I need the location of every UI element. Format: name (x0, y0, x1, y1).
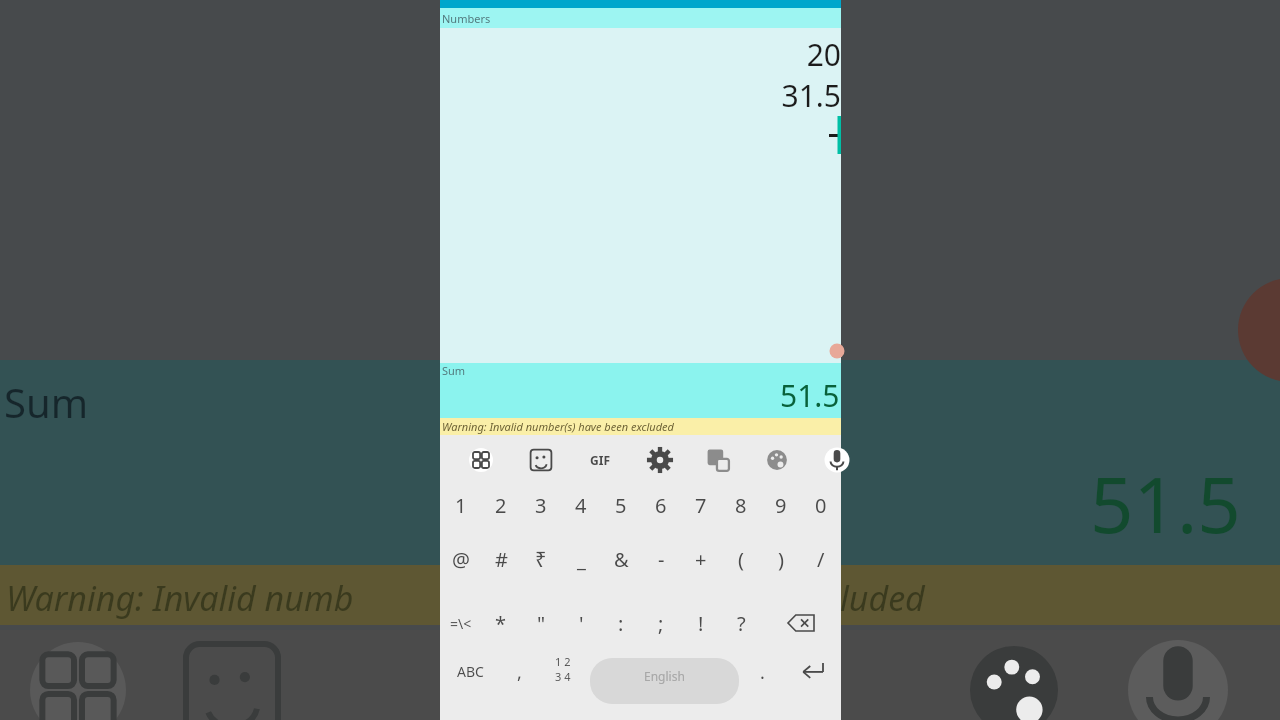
staticText: ) (778, 546, 784, 573)
staticText: ( (738, 546, 744, 573)
staticText: * (495, 610, 507, 637)
button[interactable]: _ (561, 527, 601, 592)
button[interactable]: 0 (801, 484, 841, 527)
staticText: 2 (495, 492, 507, 519)
staticText: 6 (655, 492, 667, 519)
staticText: : (618, 610, 624, 637)
button[interactable]: ? (721, 592, 761, 654)
button[interactable]: 20 (440, 28, 841, 363)
button[interactable]: " (521, 592, 561, 654)
button[interactable]: ABC (440, 654, 500, 714)
button[interactable]: 8 (721, 484, 761, 527)
staticText: 8 (735, 492, 747, 519)
button[interactable]: 3 (521, 484, 561, 527)
button[interactable]: 5 (601, 484, 641, 527)
staticText: ABC (457, 662, 484, 681)
button[interactable]: 1 2 (539, 654, 586, 714)
button[interactable]: ₹ (521, 527, 561, 592)
staticText: _ (577, 546, 586, 573)
staticText: 0 (815, 492, 827, 519)
staticText: 7 (695, 492, 707, 519)
button[interactable]: # (481, 527, 521, 592)
button[interactable]: Settings (640, 440, 680, 480)
staticText: Warning: Invalid numb (6, 575, 354, 621)
staticText: GIF (580, 452, 620, 468)
staticText: . (760, 660, 765, 685)
staticText: luded (840, 575, 925, 621)
staticText: 3 4 (555, 669, 571, 684)
staticText: , (517, 660, 522, 685)
staticText: 1 (455, 492, 467, 519)
button[interactable]: * (481, 592, 521, 654)
button[interactable]: English (590, 658, 739, 704)
staticText: 20 (806, 34, 841, 75)
staticText: 9 (775, 492, 787, 519)
staticText: " (537, 610, 546, 637)
staticText: English (644, 668, 685, 684)
button[interactable]: 6 (641, 484, 681, 527)
staticText: Sum (4, 375, 89, 429)
button[interactable]: ; (641, 592, 681, 654)
staticText: Warning: Invalid number(s) have been exc… (442, 419, 674, 434)
staticText: Numbers (442, 11, 491, 26)
button[interactable]: Comma (500, 654, 539, 714)
button[interactable]: GIF (580, 440, 620, 480)
button[interactable]: @ (440, 527, 481, 592)
staticText: 5 (615, 492, 627, 519)
staticText: & (614, 546, 629, 573)
staticText: 3 (535, 492, 547, 519)
button[interactable]: ! (681, 592, 721, 654)
button[interactable]: / (801, 527, 841, 592)
staticText: / (817, 546, 825, 573)
button[interactable]: Apps (461, 440, 501, 480)
button[interactable]: Enter (782, 654, 841, 714)
button[interactable]: ) (761, 527, 801, 592)
button[interactable]: Period (743, 654, 782, 714)
staticText: Sum (442, 363, 466, 375)
button[interactable]: Voice input (817, 440, 857, 480)
staticText: 4 (575, 492, 587, 519)
staticText: # (495, 546, 508, 573)
button[interactable]: + (681, 527, 721, 592)
button[interactable]: 9 (761, 484, 801, 527)
staticText: ; (658, 610, 664, 637)
button[interactable]: : (601, 592, 641, 654)
staticText: ! (698, 610, 704, 637)
button[interactable]: 51.5 (440, 375, 841, 418)
staticText: ? (737, 610, 746, 637)
button[interactable]: =\< (440, 592, 481, 654)
staticText: =\< (450, 614, 472, 633)
button[interactable]: 7 (681, 484, 721, 527)
staticText: 1 2 (555, 654, 571, 669)
staticText: 51.5 (780, 375, 840, 416)
button[interactable]: ' (561, 592, 601, 654)
staticText: - (658, 546, 665, 573)
button[interactable]: Translate (698, 440, 738, 480)
button[interactable]: 1 (440, 484, 481, 527)
button[interactable]: Backspace (761, 592, 841, 654)
staticText: ₹ (535, 546, 547, 573)
button[interactable]: 2 (481, 484, 521, 527)
button[interactable]: Theme (757, 440, 797, 480)
staticText: @ (452, 546, 470, 573)
button[interactable]: Stickers (521, 440, 561, 480)
button[interactable]: 4 (561, 484, 601, 527)
staticText: 51.5 (1090, 452, 1241, 556)
button[interactable]: & (601, 527, 641, 592)
button[interactable]: ( (721, 527, 761, 592)
staticText: 31.5 (781, 75, 841, 116)
staticText: + (695, 546, 707, 573)
button[interactable]: - (641, 527, 681, 592)
staticText: ' (579, 610, 584, 637)
